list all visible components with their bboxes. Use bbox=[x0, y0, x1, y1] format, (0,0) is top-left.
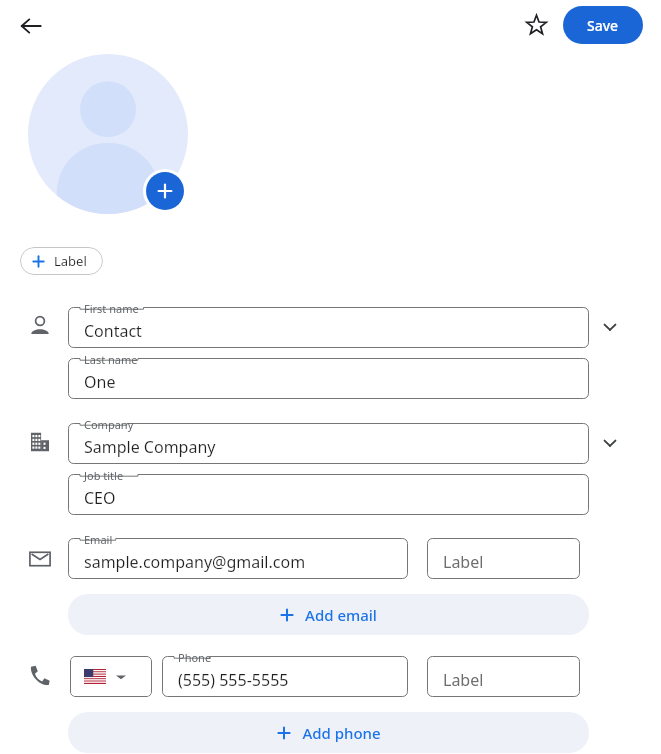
button[interactable]: Company bbox=[68, 423, 589, 464]
staticText: Job title bbox=[84, 468, 124, 483]
button[interactable]: Phone bbox=[162, 656, 408, 697]
button[interactable]: Add photo bbox=[146, 172, 184, 210]
button[interactable]: Last name bbox=[68, 358, 589, 399]
button[interactable]: Expand name fields bbox=[596, 313, 624, 341]
staticText: First name bbox=[84, 301, 139, 316]
staticText: Email bbox=[84, 532, 113, 547]
button[interactable]: Save bbox=[563, 6, 643, 44]
staticText: Last name bbox=[84, 352, 138, 367]
staticText: Contact bbox=[84, 320, 142, 342]
staticText: Save bbox=[587, 16, 619, 35]
staticText: Sample Company bbox=[84, 436, 216, 458]
staticText: Add phone bbox=[302, 723, 381, 743]
button[interactable]: Label bbox=[427, 538, 580, 579]
button[interactable]: Label bbox=[20, 247, 103, 275]
staticText: Phone bbox=[178, 650, 212, 665]
button[interactable]: First name bbox=[68, 307, 589, 348]
button[interactable]: Job title bbox=[68, 474, 589, 515]
staticText: Label bbox=[54, 252, 87, 270]
staticText: One bbox=[84, 371, 116, 393]
staticText: Label bbox=[443, 669, 484, 691]
button[interactable]: Email bbox=[68, 538, 408, 579]
button[interactable]: Expand company fields bbox=[596, 429, 624, 457]
staticText: CEO bbox=[84, 487, 116, 509]
button[interactable]: Favorite bbox=[518, 7, 554, 43]
button[interactable]: Back bbox=[12, 7, 50, 45]
staticText: Label bbox=[443, 551, 484, 573]
button[interactable]: Label bbox=[427, 656, 580, 697]
staticText: Company bbox=[84, 417, 134, 432]
button[interactable]: Add email bbox=[68, 594, 589, 635]
staticText: Add email bbox=[305, 605, 377, 625]
button[interactable]: Select country code bbox=[70, 656, 152, 697]
staticText: sample.company@gmail.com bbox=[84, 551, 306, 573]
staticText: (555) 555-5555 bbox=[178, 669, 289, 691]
button[interactable]: Add phone bbox=[68, 712, 589, 753]
